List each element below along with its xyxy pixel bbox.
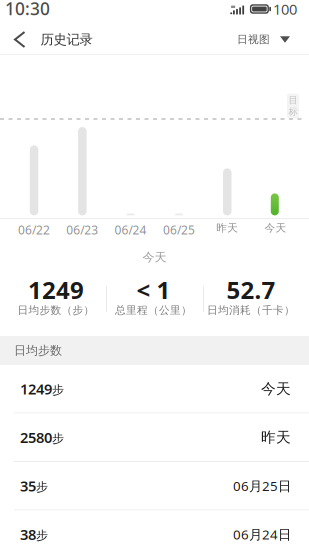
staticText: 昨天 <box>216 221 238 235</box>
staticText: 日均步数 <box>14 343 62 358</box>
staticText: 35 <box>20 476 36 495</box>
button[interactable]: 1249 <box>0 365 309 413</box>
staticText: 日视图 <box>237 33 270 46</box>
staticText: 今天 <box>264 221 286 235</box>
button[interactable]: 38 <box>0 510 309 550</box>
staticText: 1249 <box>28 274 84 306</box>
staticText: 06/23 <box>66 222 98 238</box>
staticText: 步 <box>52 383 64 397</box>
staticText: 总里程（公里） <box>115 304 192 317</box>
staticText: 标 <box>288 106 297 117</box>
staticText: 今天 <box>142 250 166 265</box>
staticText: 日均消耗（千卡） <box>207 304 295 317</box>
staticText: 历史记录 <box>40 31 92 48</box>
staticText: 10:30 <box>5 0 50 20</box>
staticText: 目 <box>288 94 297 106</box>
staticText: 步 <box>36 480 48 494</box>
button[interactable]: 35 <box>0 462 309 510</box>
staticText: 100 <box>273 0 297 19</box>
staticText: 日均步数（步） <box>17 304 94 317</box>
staticText: 06月25日 <box>233 477 291 495</box>
button[interactable]: Back <box>0 32 40 47</box>
staticText: 06/25 <box>163 222 195 238</box>
button[interactable]: 2580 <box>0 413 309 462</box>
staticText: 06/22 <box>18 222 50 238</box>
staticText: < 1 <box>136 274 170 306</box>
staticText: 06/24 <box>115 222 147 238</box>
staticText: 06月24日 <box>233 525 291 543</box>
staticText: 步 <box>52 431 64 446</box>
staticText: 步 <box>36 528 48 543</box>
staticText: 38 <box>20 524 36 544</box>
staticText: 52.7 <box>226 274 275 306</box>
staticText: 昨天 <box>261 428 291 446</box>
staticText: 1249 <box>20 379 52 398</box>
button[interactable]: 日视图 <box>237 33 309 46</box>
staticText: 2580 <box>20 427 52 447</box>
staticText: 今天 <box>261 380 291 398</box>
